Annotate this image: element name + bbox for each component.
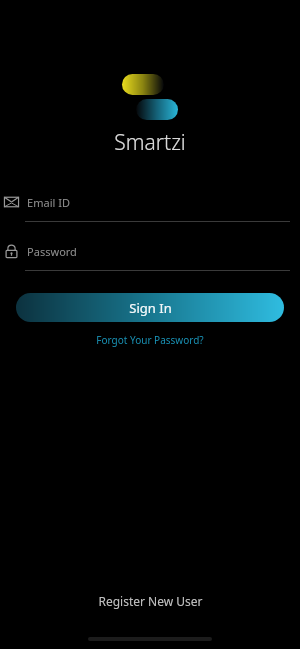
staticText: Register New User	[98, 593, 203, 609]
button[interactable]: Register New User	[88, 589, 213, 613]
staticText: Forgot Your Password?	[96, 333, 204, 347]
button[interactable]: Sign In	[16, 293, 284, 322]
other: Password	[4, 244, 19, 258]
other: Email	[4, 195, 19, 209]
button[interactable]: Password	[0, 240, 300, 271]
button[interactable]: Email	[0, 191, 300, 222]
staticText: Password	[27, 244, 77, 259]
staticText: Sign In	[129, 299, 172, 317]
staticText: Smartzi	[114, 128, 186, 157]
button[interactable]: Forgot Your Password?	[88, 331, 212, 349]
staticText: Email ID	[27, 195, 70, 210]
